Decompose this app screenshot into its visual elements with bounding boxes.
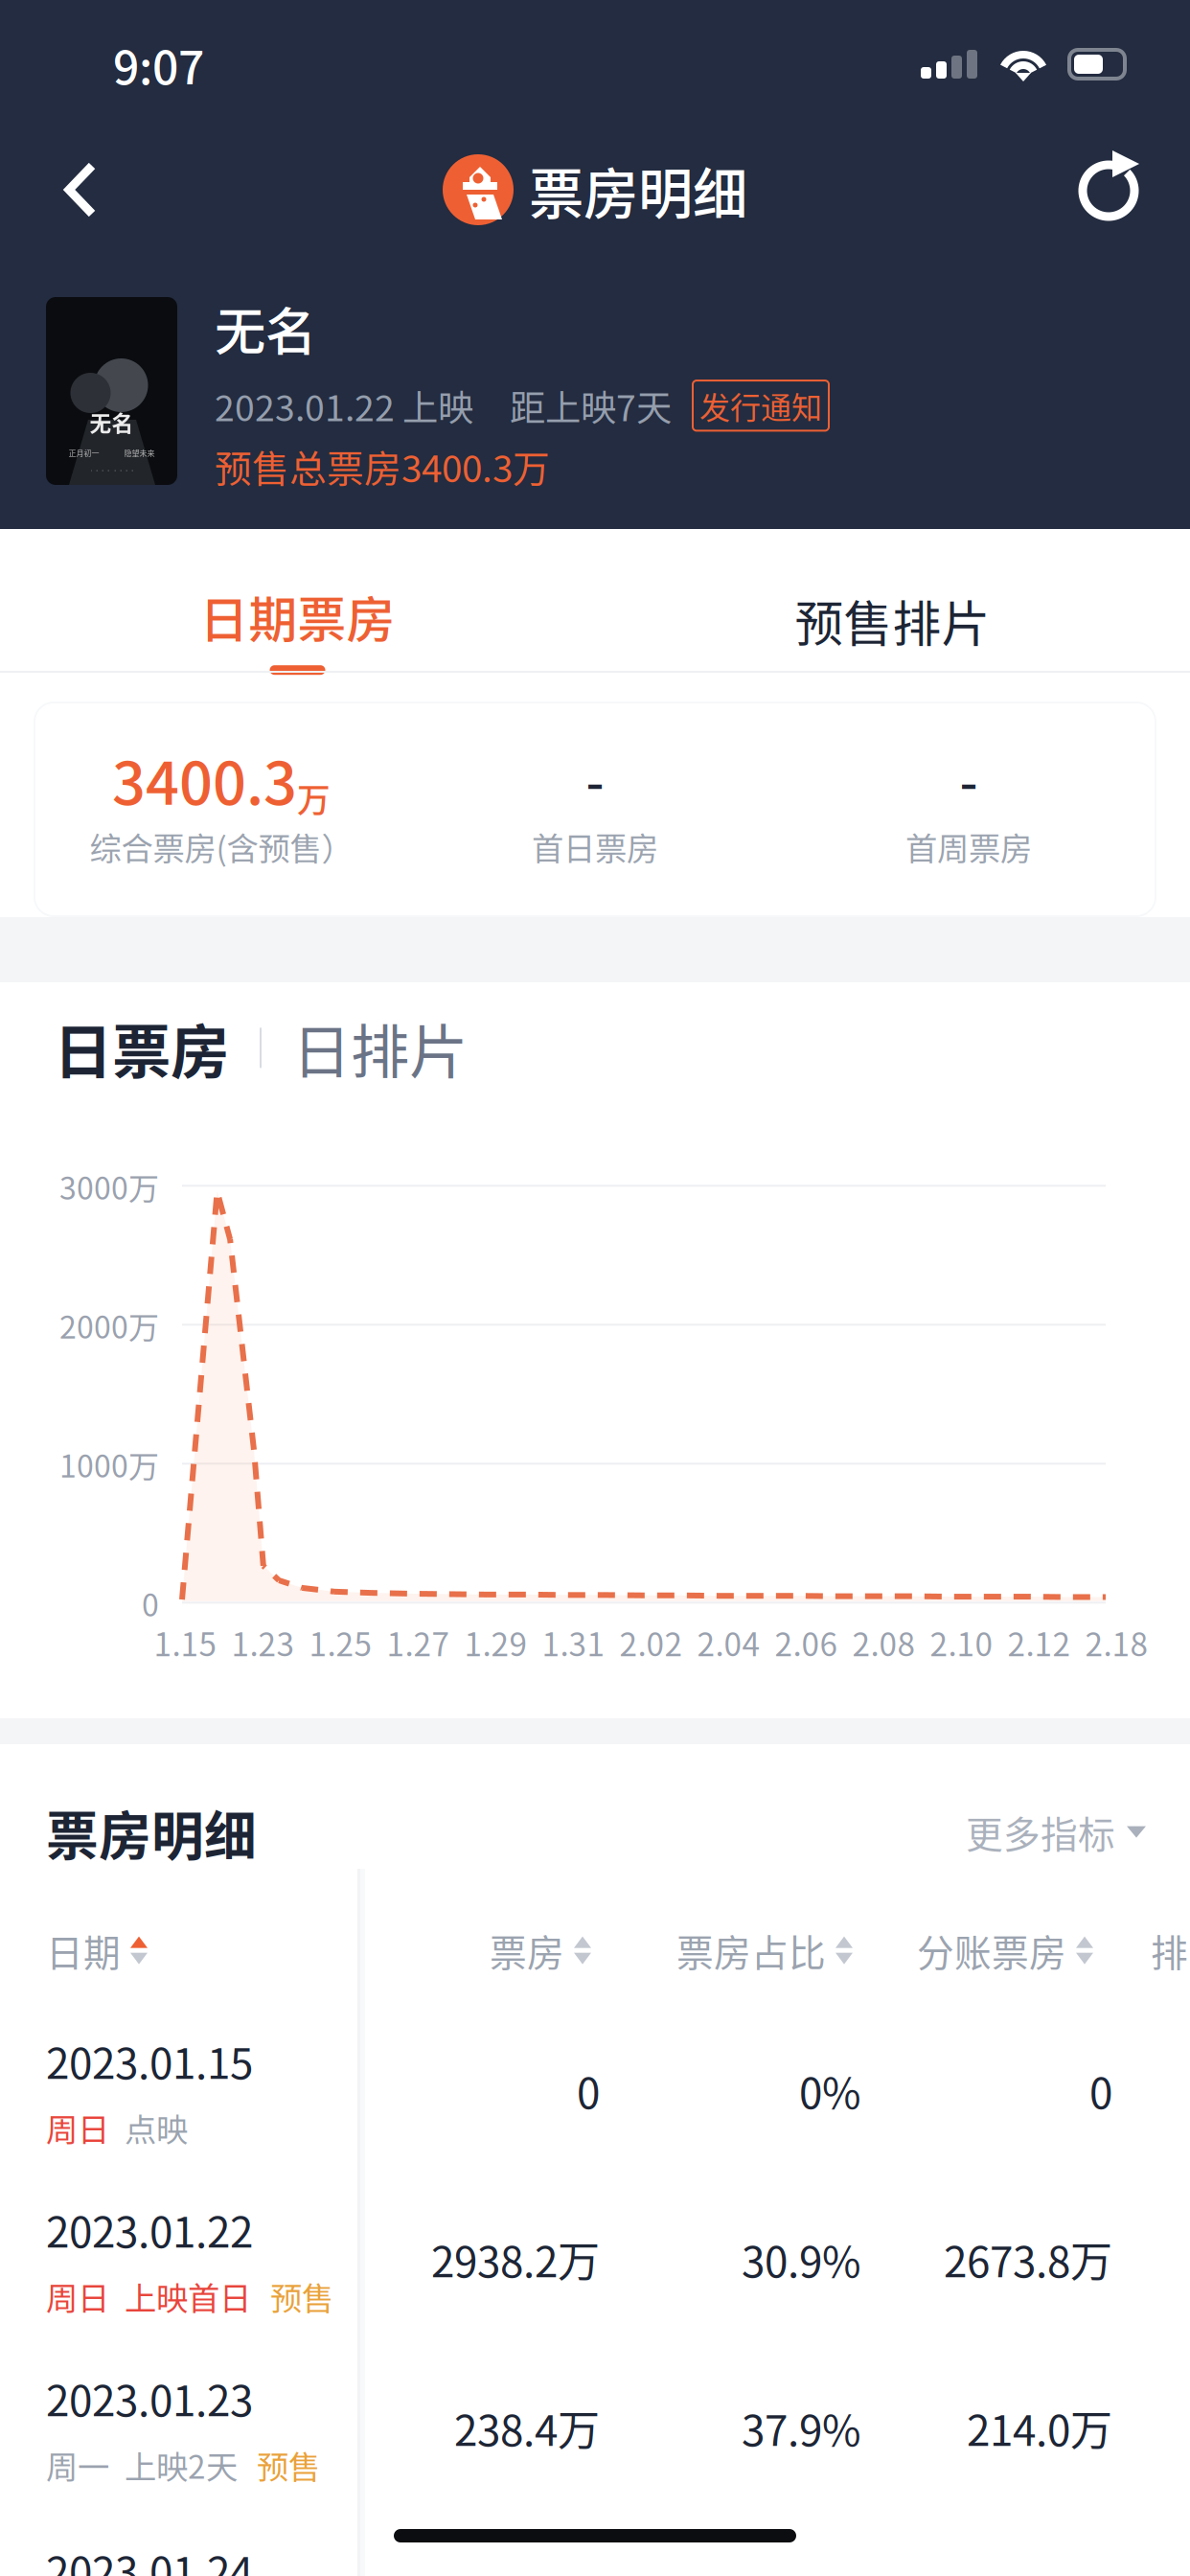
staticText: 0 (577, 2060, 600, 2121)
staticText: 1000万 (59, 1442, 159, 1486)
staticText: 票房占比 (676, 1924, 826, 1977)
button[interactable]: 日排片 (292, 1005, 468, 1090)
staticText: 更多指标 (966, 1805, 1115, 1859)
staticText: 隐望未来 (124, 447, 155, 458)
staticText: 日期 (46, 1924, 121, 1977)
staticText: 2023.01.22 (46, 2199, 253, 2260)
staticText: 2023.01.23 (46, 2367, 253, 2428)
staticText: 无名 (215, 291, 316, 365)
staticText: 综合票房(含预售） (90, 823, 353, 869)
staticText: 距上映7天 (510, 380, 672, 432)
staticText: 分账票房 (917, 1924, 1066, 1977)
staticText: 预售排片 (795, 586, 990, 656)
staticText: 214.0万 (967, 2397, 1112, 2458)
staticText: 首日票房 (532, 823, 658, 869)
staticText: - (586, 742, 604, 816)
staticText: 0 (142, 1581, 159, 1625)
staticText: 2023.01.24 (46, 2539, 253, 2576)
staticText: 1.15 (154, 1619, 217, 1666)
button[interactable]: 票房占比 (676, 1924, 853, 1977)
staticText: 2938.2万 (431, 2228, 600, 2289)
staticText: 0% (799, 2060, 861, 2121)
button[interactable]: 预售排片 (595, 529, 1190, 671)
staticText: 238.4万 (454, 2397, 600, 2458)
staticText: 周日 (46, 2273, 109, 2319)
staticText: 2000万 (59, 1303, 159, 1347)
staticText: 2.04 (697, 1619, 760, 1666)
button[interactable]: 分账票房 (917, 1924, 1093, 1977)
staticText: 2023.01.22 上映 (215, 380, 473, 432)
staticText: 2673.8万 (944, 2228, 1112, 2289)
staticText: 排 (1151, 1924, 1188, 1977)
staticText: 预售 (257, 2442, 320, 2488)
staticText: 正月初一 (69, 447, 99, 458)
staticText: 9:07 (113, 31, 204, 97)
staticText: 1.27 (387, 1619, 450, 1666)
staticText: 预售 (270, 2273, 333, 2319)
staticText: 上映首日 (125, 2273, 251, 2319)
staticText: 周一 (46, 2442, 109, 2488)
staticText: 1.31 (542, 1619, 605, 1666)
staticText: 日票房 (54, 1005, 229, 1090)
staticText: 票房明细 (529, 150, 747, 230)
button[interactable]: 2023.01.22 (0, 2175, 1190, 2343)
button[interactable]: 日期票房 (0, 529, 595, 671)
staticText: 票房明细 (46, 1794, 257, 1870)
staticText: 1.23 (231, 1619, 295, 1666)
staticText: 1.25 (309, 1619, 372, 1666)
staticText: 2.08 (852, 1619, 915, 1666)
staticText: 2.18 (1085, 1619, 1148, 1666)
staticText: 2.06 (775, 1619, 838, 1666)
staticText: 0 (1089, 2060, 1112, 2121)
staticText: 万 (297, 774, 331, 822)
staticText: 30.9% (742, 2228, 861, 2289)
button[interactable]: Back (17, 128, 144, 251)
staticText: 3400.3 (112, 737, 297, 822)
staticText: 2.10 (930, 1619, 993, 1666)
staticText: 日排片 (292, 1005, 468, 1090)
staticText: 3000万 (59, 1164, 159, 1208)
staticText: 无名 (90, 406, 134, 438)
button[interactable]: 票房 (490, 1924, 591, 1977)
button[interactable]: 日票房 (54, 1005, 229, 1090)
button[interactable]: 日期 (46, 1924, 148, 1977)
staticText: 2.02 (619, 1619, 683, 1666)
staticText: 点映 (125, 2104, 188, 2151)
button[interactable]: 2023.01.15 (0, 2006, 1190, 2175)
staticText: 票房 (490, 1924, 564, 1977)
staticText: 发行通知 (699, 383, 822, 428)
staticText: - (960, 742, 978, 816)
staticText: 1.29 (464, 1619, 527, 1666)
staticText: 预售总票房3400.3万 (215, 439, 550, 493)
button[interactable]: 2023.01.23 (0, 2343, 1190, 2512)
button[interactable]: 更多指标 (966, 1805, 1146, 1859)
staticText: 上映2天 (125, 2442, 238, 2488)
staticText: 日期票房 (200, 582, 395, 652)
staticText: 2023.01.15 (46, 2030, 253, 2091)
button[interactable]: Share (1046, 128, 1173, 251)
staticText: 首周票房 (905, 823, 1032, 869)
staticText: 37.9% (742, 2397, 861, 2458)
staticText: • • • • • • • • (89, 467, 135, 474)
staticText: 2.12 (1007, 1619, 1071, 1666)
staticText: 周日 (46, 2104, 109, 2151)
